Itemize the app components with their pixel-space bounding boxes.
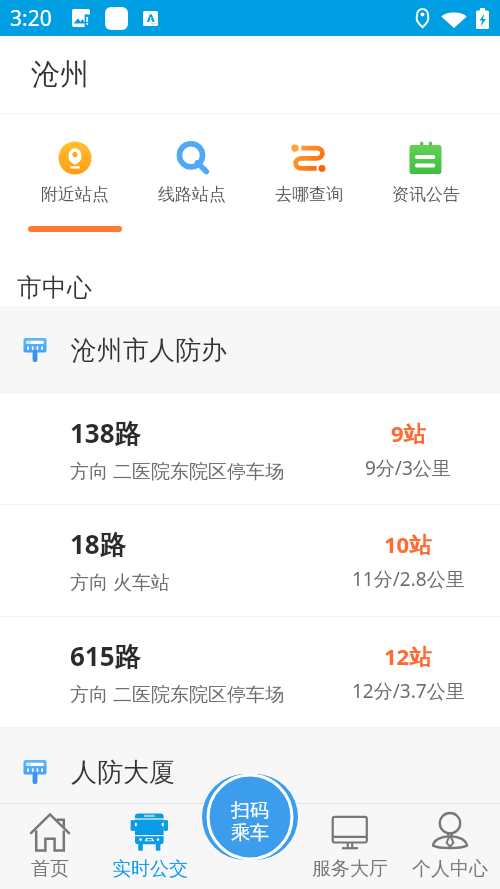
staticText: 人防大厦 bbox=[71, 756, 175, 789]
staticText: 首页 bbox=[31, 857, 69, 881]
staticText: 沧州市人防办 bbox=[71, 334, 227, 367]
button[interactable]: 线路站点 bbox=[133, 114, 250, 205]
button[interactable]: 138路 bbox=[0, 394, 500, 504]
button[interactable]: 实时公交 bbox=[100, 803, 200, 889]
staticText: 9分/3公里 bbox=[365, 455, 451, 481]
button[interactable]: 资讯公告 bbox=[367, 114, 484, 205]
staticText: 沧州 bbox=[31, 56, 89, 93]
button[interactable]: 615路 bbox=[0, 617, 500, 727]
button[interactable]: 个人中心 bbox=[400, 803, 500, 889]
staticText: 615路 bbox=[70, 638, 141, 674]
button[interactable]: 去哪查询 bbox=[250, 114, 367, 205]
staticText: 10站 bbox=[384, 529, 432, 559]
staticText: 11分/2.8公里 bbox=[352, 566, 465, 592]
button[interactable]: 扫码乘车 bbox=[202, 774, 298, 860]
staticText: 138路 bbox=[70, 415, 141, 451]
button[interactable]: 首页 bbox=[0, 803, 100, 889]
button[interactable]: 附近站点 bbox=[16, 114, 133, 205]
staticText: 资讯公告 bbox=[392, 184, 460, 205]
staticText: 市中心 bbox=[17, 272, 92, 303]
button[interactable]: 18路 bbox=[0, 505, 500, 616]
button[interactable]: 沧州市人防办 bbox=[0, 306, 500, 394]
staticText: 方向 二医院东院区停车场 bbox=[70, 458, 284, 484]
staticText: 方向 火车站 bbox=[70, 569, 170, 595]
staticText: 12站 bbox=[384, 641, 432, 671]
staticText: 3:20 bbox=[10, 4, 52, 33]
staticText: 线路站点 bbox=[158, 184, 226, 205]
staticText: 扫码 乘车 bbox=[231, 799, 269, 844]
staticText: 9站 bbox=[391, 418, 426, 448]
staticText: 12分/3.7公里 bbox=[352, 678, 465, 704]
staticText: 个人中心 bbox=[412, 857, 488, 881]
staticText: 服务大厅 bbox=[312, 857, 388, 881]
staticText: 附近站点 bbox=[41, 184, 109, 205]
staticText: 方向 二医院东院区停车场 bbox=[70, 681, 284, 707]
button[interactable]: 人防大厦 bbox=[0, 728, 500, 816]
staticText: 18路 bbox=[70, 526, 126, 562]
staticText: 实时公交 bbox=[112, 857, 188, 881]
staticText: 去哪查询 bbox=[275, 184, 343, 205]
button[interactable]: 服务大厅 bbox=[300, 803, 400, 889]
